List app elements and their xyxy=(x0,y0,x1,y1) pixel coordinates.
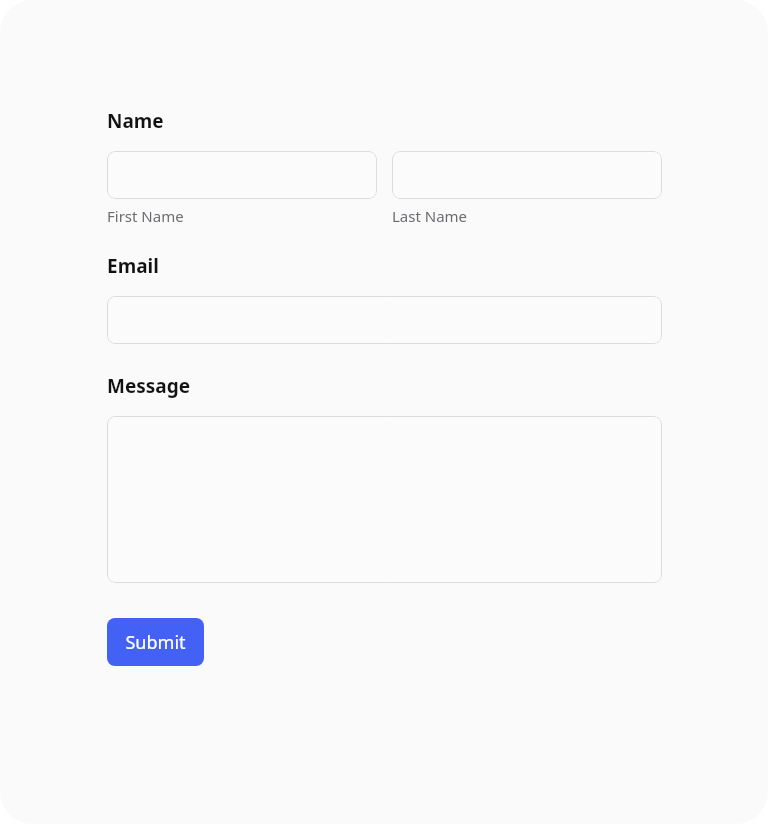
staticText: Submit xyxy=(125,630,186,655)
button[interactable]: Submit xyxy=(107,618,204,666)
button[interactable] xyxy=(392,151,662,199)
button[interactable] xyxy=(107,296,662,344)
staticText: Message xyxy=(107,373,191,399)
staticText: First Name xyxy=(107,206,184,226)
staticText: Last Name xyxy=(392,206,468,226)
button[interactable] xyxy=(107,151,377,199)
button[interactable] xyxy=(107,416,662,583)
staticText: Email xyxy=(107,253,159,279)
staticText: Name xyxy=(107,108,164,134)
